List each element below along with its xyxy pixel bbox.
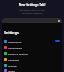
button[interactable]: Appearance — [2, 38, 62, 44]
staticText: Privacy & Security — [8, 52, 28, 55]
staticText: About — [8, 69, 15, 72]
staticText: Lorem ipsum dolor sit amet consectetur a… — [0, 9, 64, 15]
staticText: Storage — [8, 64, 17, 67]
button[interactable]: Notifications — [2, 44, 62, 50]
staticText: Appearance — [8, 40, 22, 43]
button[interactable]: Privacy & Security — [2, 50, 62, 56]
staticText: New Settings Tab! — [0, 3, 64, 7]
button[interactable]: Storage — [2, 62, 62, 68]
staticText: Settings — [4, 30, 19, 35]
button[interactable]: About — [2, 68, 62, 72]
staticText: Language — [8, 58, 20, 61]
button[interactable]: Language — [2, 56, 62, 62]
staticText: Notifications — [8, 46, 23, 49]
button[interactable]: Toggle — [55, 40, 60, 42]
